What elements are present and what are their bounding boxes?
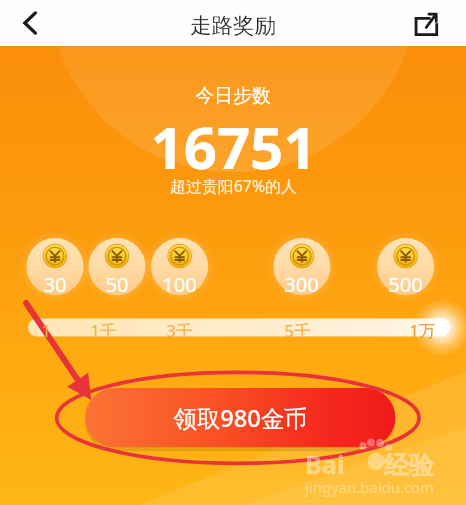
staticText: 30 (43, 270, 67, 298)
staticText: 超过贵阳67%的人 (170, 175, 297, 197)
staticText: 500 (388, 270, 423, 298)
staticText: 1万 (409, 319, 436, 342)
staticText: 100 (162, 270, 197, 298)
staticText: 1千 (90, 319, 117, 342)
staticText: 走路奖励 (190, 12, 276, 39)
staticText: 3千 (166, 319, 193, 342)
staticText: 5千 (284, 319, 311, 342)
staticText: jingyan.baidu.com (305, 477, 434, 497)
staticText: 领取980金币 (173, 402, 308, 434)
staticText: 16751 (150, 107, 317, 186)
staticText: 300 (284, 270, 319, 298)
staticText: 50 (105, 270, 129, 298)
staticText: 1 (41, 319, 51, 342)
button[interactable]: 领取980金币 (85, 388, 395, 447)
button[interactable]: Back (6, 2, 60, 46)
staticText: 今日步数 (195, 84, 271, 108)
button[interactable]: Share (402, 2, 456, 46)
staticText: Bai 经验 (305, 447, 435, 481)
